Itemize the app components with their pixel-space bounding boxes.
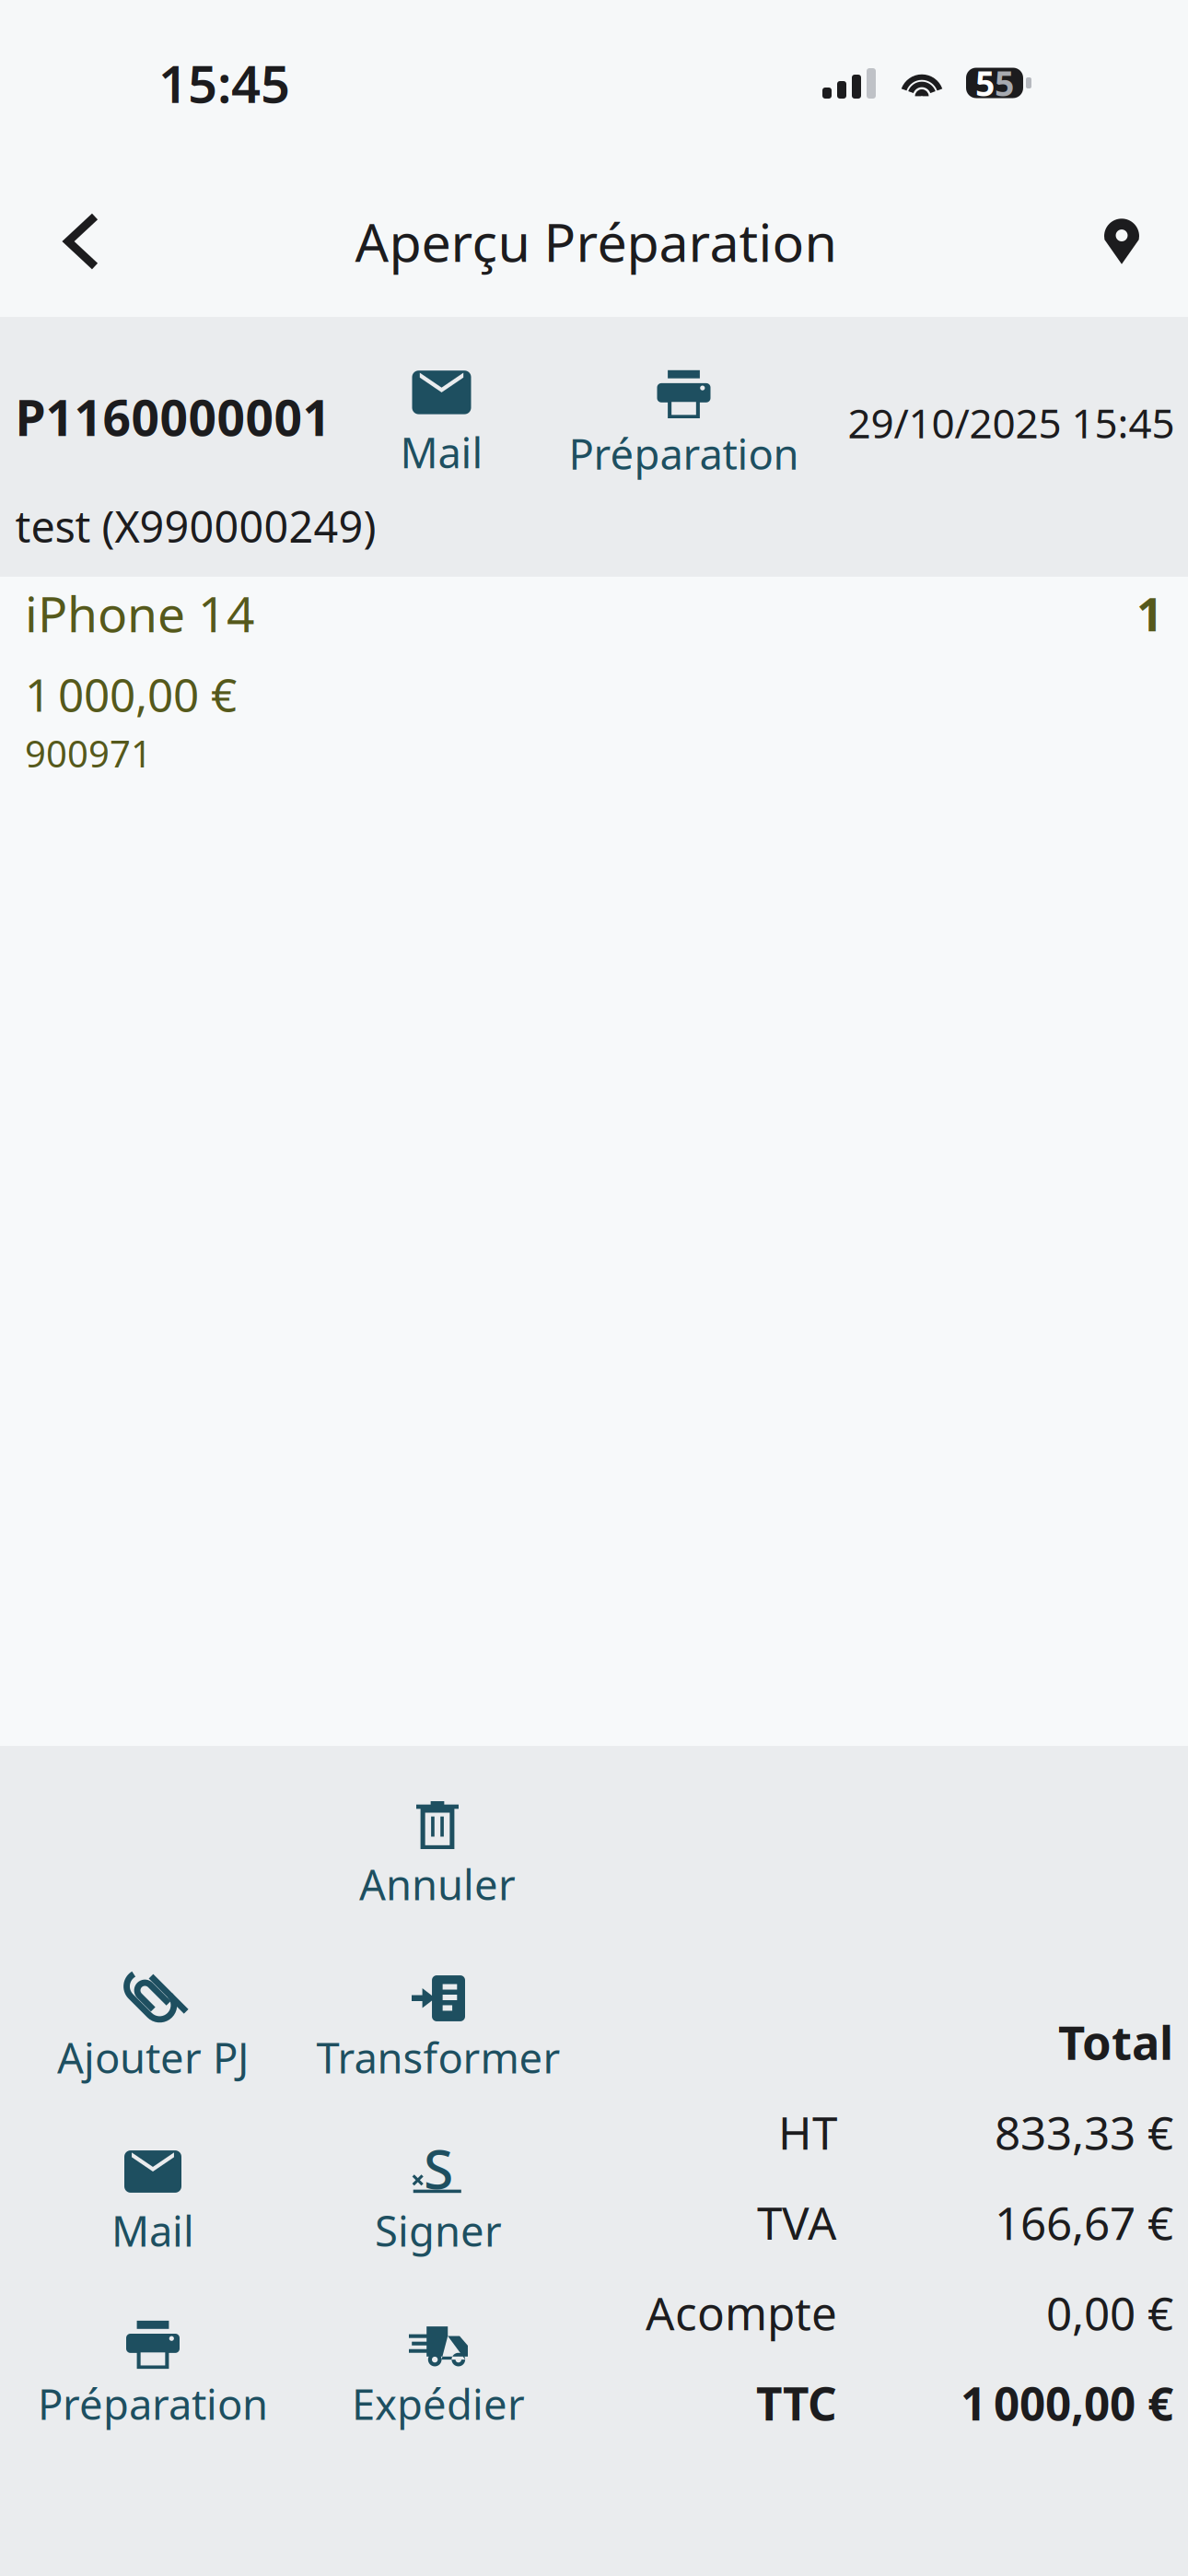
staticText: S	[424, 2132, 453, 2204]
staticText: Transformer	[316, 2030, 560, 2085]
staticText: 1 000,00 €	[25, 664, 237, 724]
staticText: HT	[778, 2102, 837, 2162]
staticText: Acompte	[646, 2282, 837, 2343]
staticText: 0,00 €	[1046, 2282, 1173, 2343]
staticText: Mail	[400, 424, 483, 480]
button[interactable]: Ajouter PJ	[10, 1939, 296, 2113]
button[interactable]: S	[296, 2113, 581, 2286]
button[interactable]: iPhone 14	[0, 577, 1188, 1746]
staticText: Annuler	[359, 1856, 516, 1912]
staticText: 5	[995, 60, 1014, 106]
staticText: Ajouter PJ	[57, 2030, 249, 2085]
button[interactable]: Localisation	[1019, 181, 1188, 301]
staticText: Expédier	[352, 2376, 525, 2431]
staticText: TVA	[757, 2192, 837, 2252]
staticText: 1	[1136, 582, 1163, 644]
button[interactable]: Mail	[356, 317, 527, 475]
staticText: iPhone 14	[25, 581, 255, 646]
button[interactable]: Transformer	[296, 1939, 581, 2113]
staticText: 1 000,00 €	[961, 2373, 1173, 2433]
button[interactable]: Préparation	[10, 2286, 296, 2459]
staticText: Préparation	[38, 2376, 268, 2431]
staticText: 900971	[25, 729, 152, 778]
staticText: 5	[975, 60, 995, 106]
staticText: test (X990000249)	[15, 498, 376, 555]
staticText: 166,67 €	[995, 2192, 1173, 2252]
button[interactable]: Retour	[0, 181, 181, 301]
staticText: Total	[1058, 2011, 1173, 2073]
staticText: Préparation	[569, 426, 799, 481]
button[interactable]: Annuler	[295, 1766, 580, 1939]
staticText: 833,33 €	[995, 2102, 1173, 2162]
staticText: P1160000001	[15, 384, 331, 450]
staticText: 29/10/2025 15:45	[848, 396, 1175, 450]
staticText: Signer	[375, 2203, 502, 2258]
staticText: Aperçu Préparation	[355, 206, 837, 276]
staticText: TTC	[756, 2373, 837, 2433]
staticText: Mail	[111, 2203, 194, 2258]
staticText: 15:45	[158, 49, 290, 117]
button[interactable]: Préparation	[527, 317, 840, 475]
button[interactable]: Mail	[10, 2113, 296, 2286]
button[interactable]: Expédier	[296, 2286, 581, 2459]
